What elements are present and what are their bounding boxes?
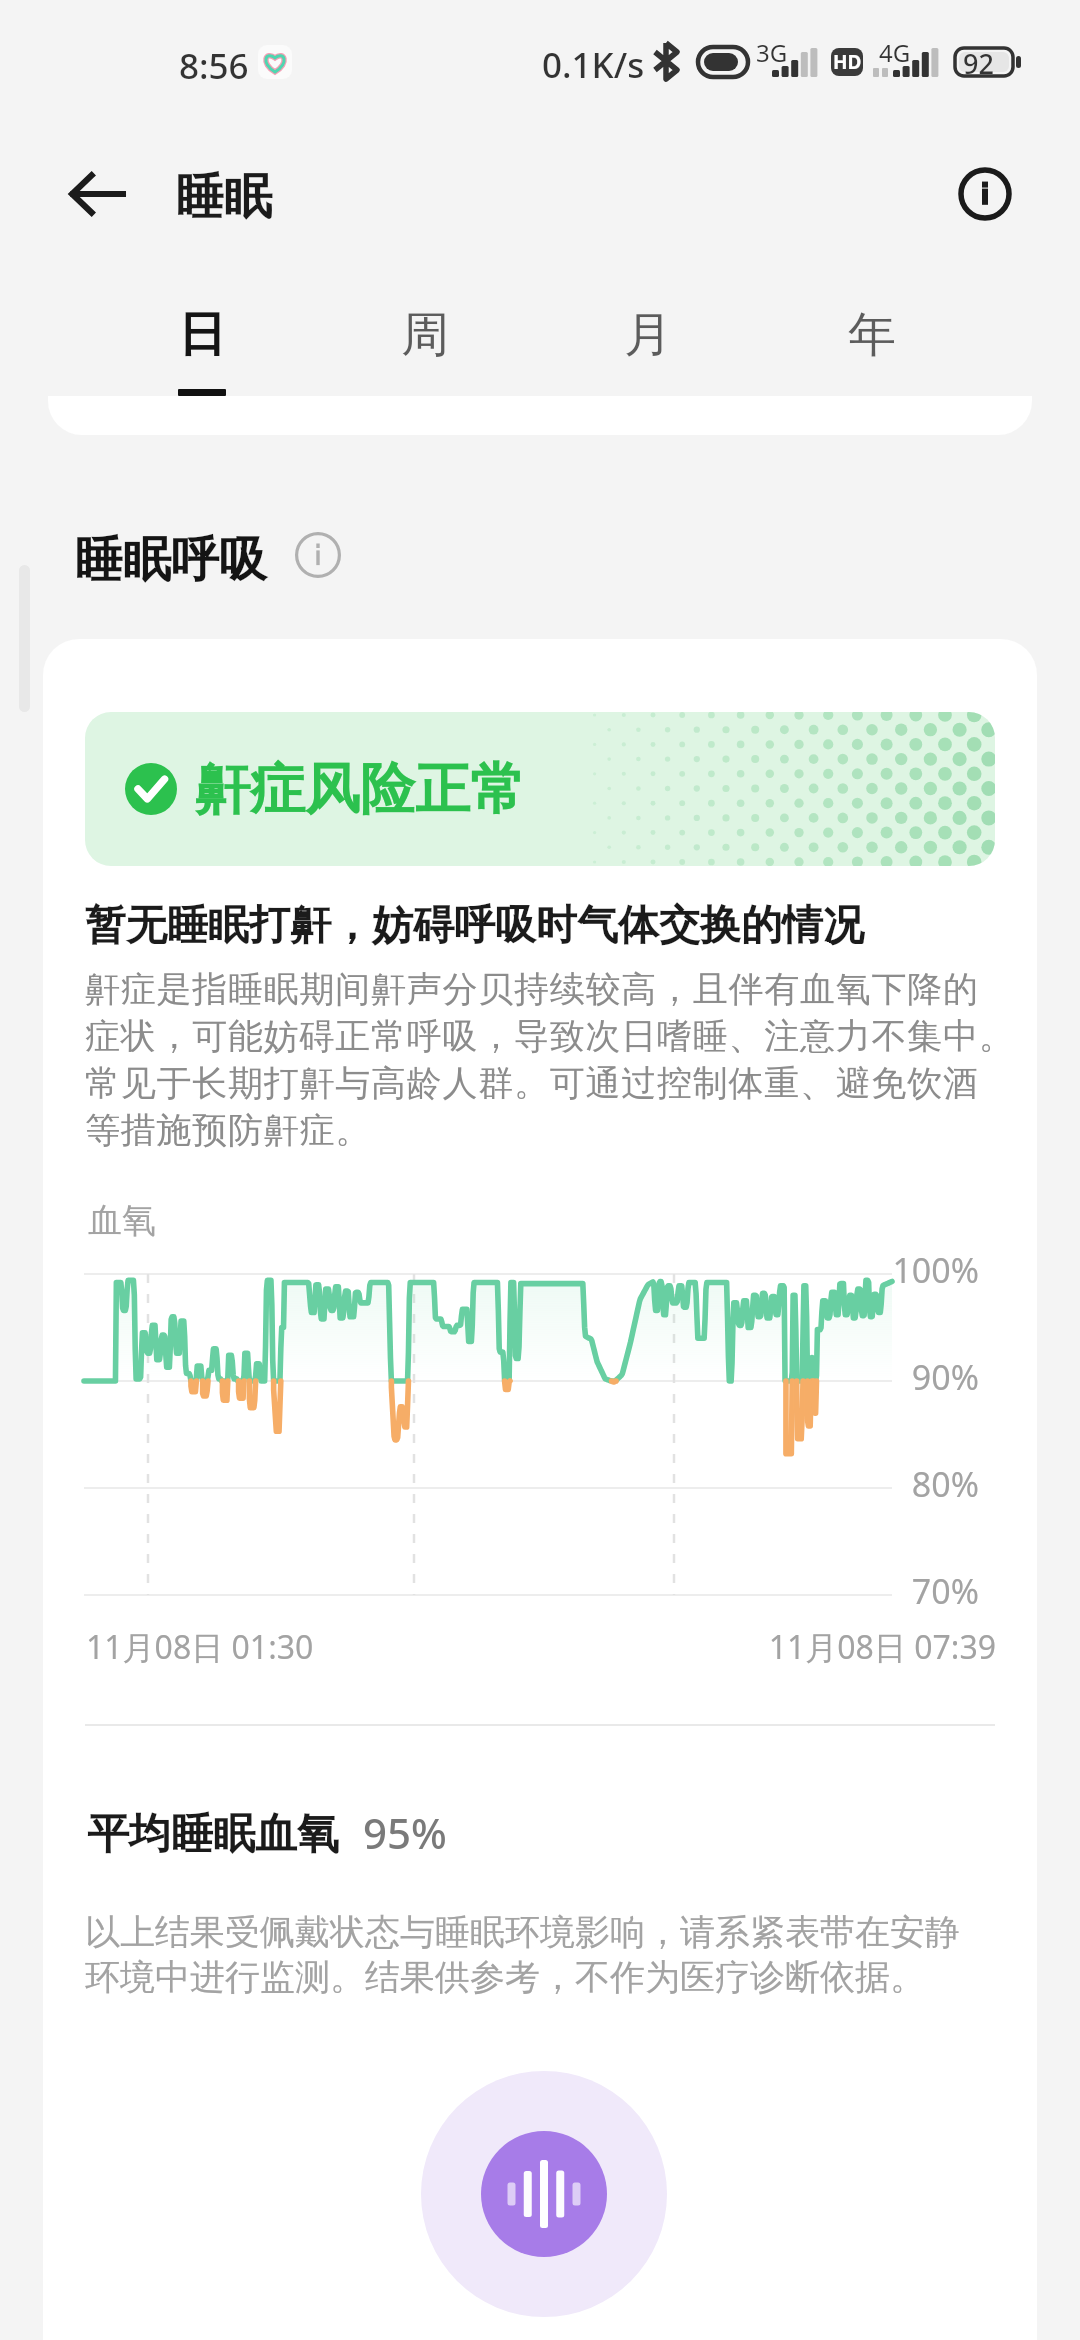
staticText: 0.1K/s: [542, 41, 645, 89]
staticText: 70%: [911, 1568, 979, 1614]
staticText: 92: [963, 45, 994, 82]
staticText: 95%: [363, 1804, 447, 1861]
staticText: 以上结果受佩戴状态与睡眠环境影响，请系紧表带在安静 环境中进行监测。结果供参考，…: [85, 1910, 960, 2000]
staticText: 鼾症是指睡眠期间鼾声分贝持续较高，且伴有血氧下降的 症状，可能妨碍正常呼吸，导致…: [85, 967, 1015, 1152]
staticText: 90%: [911, 1354, 979, 1400]
staticText: 11月08日 07:39: [768, 1625, 996, 1669]
staticText: 鼾症风险正常: [195, 755, 525, 824]
staticText: 平均睡眠血氧: [87, 1808, 339, 1861]
button[interactable]: 年: [760, 290, 984, 410]
staticText: 80%: [911, 1461, 979, 1507]
staticText: HD: [833, 49, 862, 75]
staticText: 11月08日 01:30: [86, 1625, 314, 1669]
staticText: 年: [848, 305, 896, 365]
button[interactable]: 月: [536, 290, 760, 410]
button[interactable]: 周: [313, 290, 536, 410]
button[interactable]: Info: [290, 527, 346, 583]
staticText: 暂无睡眠打鼾，妨碍呼吸时气体交换的情况: [85, 900, 864, 952]
staticText: 睡眠呼吸: [75, 530, 267, 590]
staticText: 月: [624, 305, 672, 365]
button[interactable]: 鼾症风险正常: [85, 712, 995, 866]
button[interactable]: Record snoring: [421, 2071, 667, 2317]
staticText: 4G: [879, 36, 911, 69]
button[interactable]: Info: [935, 144, 1035, 244]
staticText: 日: [178, 305, 226, 365]
staticText: 3G: [756, 36, 788, 69]
button[interactable]: 日: [90, 290, 313, 410]
staticText: 血氧: [88, 1199, 156, 1242]
staticText: 睡眠: [176, 167, 272, 227]
staticText: 周: [401, 305, 449, 365]
staticText: 8:56: [179, 42, 249, 90]
button[interactable]: Back: [47, 144, 147, 244]
staticText: 100%: [892, 1247, 979, 1293]
